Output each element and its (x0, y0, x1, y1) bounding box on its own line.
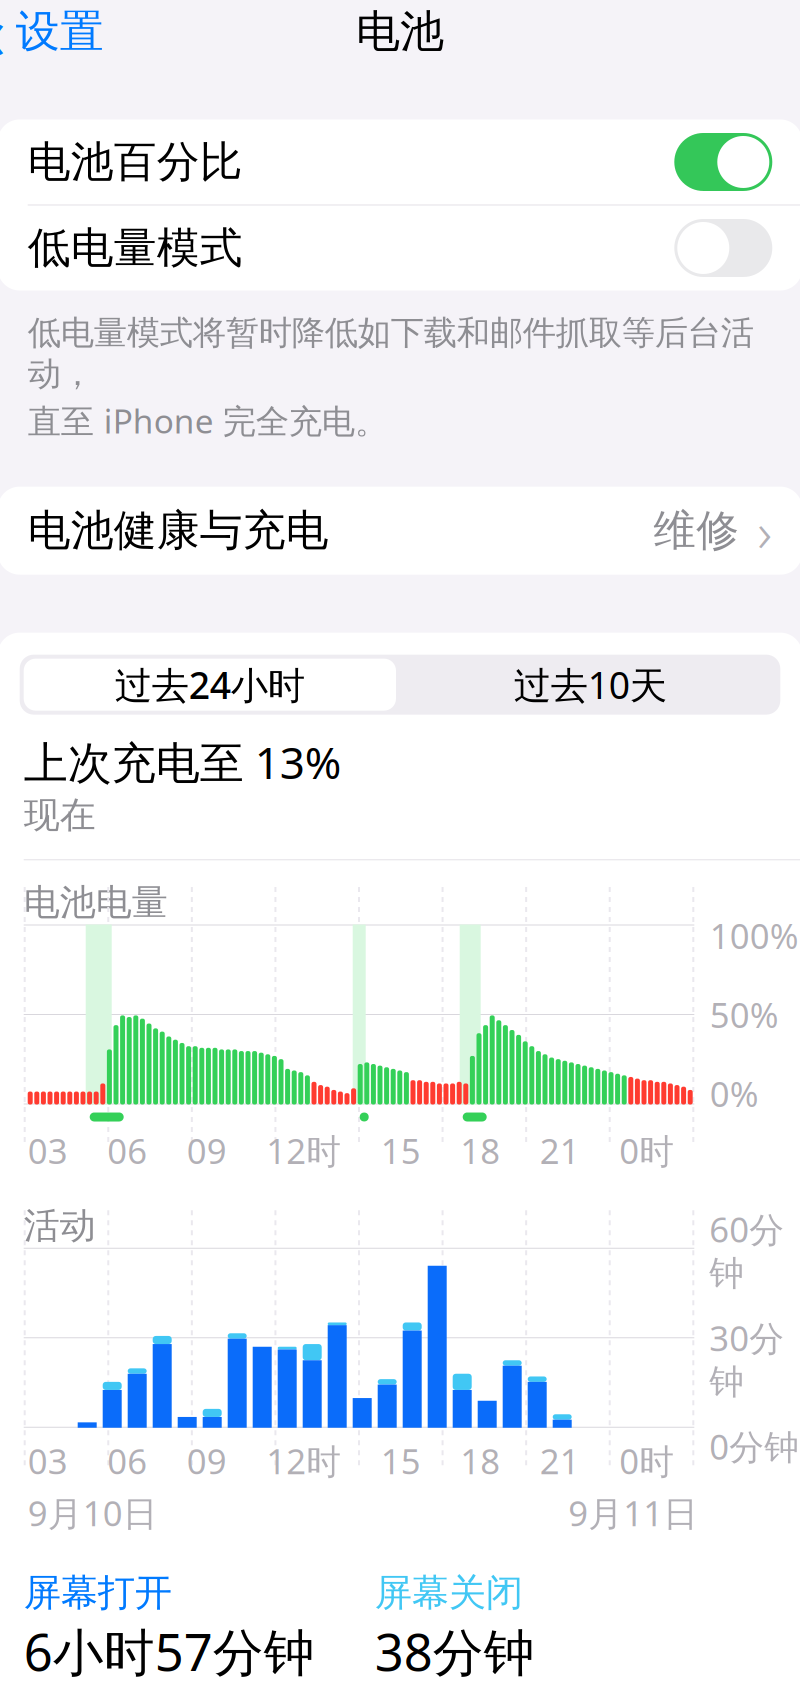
staticText: 维修 (653, 504, 739, 557)
staticText: 30分钟 (709, 1315, 784, 1403)
staticText: 0分钟 (709, 1423, 799, 1469)
staticText: 活动 (24, 1203, 96, 1248)
staticText: 低电量模式 (28, 222, 243, 274)
staticText: 09 (187, 1438, 227, 1484)
staticText: 0时 (619, 1438, 674, 1484)
staticText: 100% (710, 912, 799, 958)
staticText: 38分钟 (375, 1618, 535, 1685)
staticText: 过去24小时 (115, 660, 305, 709)
button[interactable]: 电池百分比 (0, 119, 800, 204)
staticText: 9月10日 (28, 1490, 158, 1536)
staticText: 6小时57分钟 (24, 1618, 315, 1685)
staticText: 低电量模式将暂时降低如下载和邮件抓取等后台活动， (28, 312, 754, 394)
button[interactable]: 过去24小时 (20, 655, 400, 715)
staticText: 09 (187, 1127, 227, 1173)
staticText: 12时 (266, 1438, 341, 1484)
staticText: 电池百分比 (28, 136, 243, 188)
staticText: 50% (710, 991, 779, 1037)
button[interactable]: ‹ (0, 0, 112, 87)
staticText: 上次充电至 13% (24, 733, 342, 791)
staticText: 15 (381, 1127, 421, 1173)
staticText: 电池电量 (24, 880, 168, 924)
staticText: ‹ (0, 0, 6, 81)
staticText: 过去10天 (514, 660, 667, 709)
staticText: 电池 (356, 4, 444, 58)
button[interactable]: 低电量模式 (0, 205, 800, 290)
staticText: 现在 (24, 793, 96, 837)
staticText: 设置 (16, 4, 104, 58)
staticText: 18 (460, 1127, 500, 1173)
staticText: 03 (28, 1438, 68, 1484)
staticText: 03 (28, 1127, 68, 1173)
staticText: 60分钟 (709, 1206, 784, 1295)
button[interactable]: 电池健康与充电 (0, 487, 800, 575)
staticText: 屏幕打开 (24, 1570, 172, 1616)
staticText: 9月11日 (568, 1490, 698, 1536)
staticText: 12时 (266, 1127, 341, 1173)
staticText: 21 (540, 1438, 580, 1484)
staticText: 0时 (619, 1127, 674, 1173)
staticText: › (757, 493, 772, 568)
staticText: 21 (540, 1127, 580, 1173)
staticText: 06 (107, 1127, 147, 1173)
staticText: 电池健康与充电 (28, 504, 329, 557)
staticText: 直至 iPhone 完全充电。 (28, 398, 388, 443)
staticText: 18 (460, 1438, 500, 1484)
staticText: 15 (381, 1438, 421, 1484)
staticText: 06 (107, 1438, 147, 1484)
staticText: 0% (710, 1070, 759, 1116)
staticText: 屏幕关闭 (375, 1570, 523, 1616)
button[interactable]: 过去10天 (400, 655, 780, 715)
